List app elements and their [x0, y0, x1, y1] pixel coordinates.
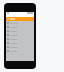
button[interactable] — [6, 41, 34, 45]
button[interactable] — [6, 25, 34, 29]
button[interactable] — [6, 45, 34, 49]
button[interactable] — [6, 49, 34, 53]
button[interactable] — [6, 37, 34, 41]
button[interactable] — [6, 29, 34, 33]
button[interactable] — [6, 33, 34, 37]
button[interactable]: Menu — [7, 18, 9, 20]
button[interactable] — [6, 21, 34, 25]
